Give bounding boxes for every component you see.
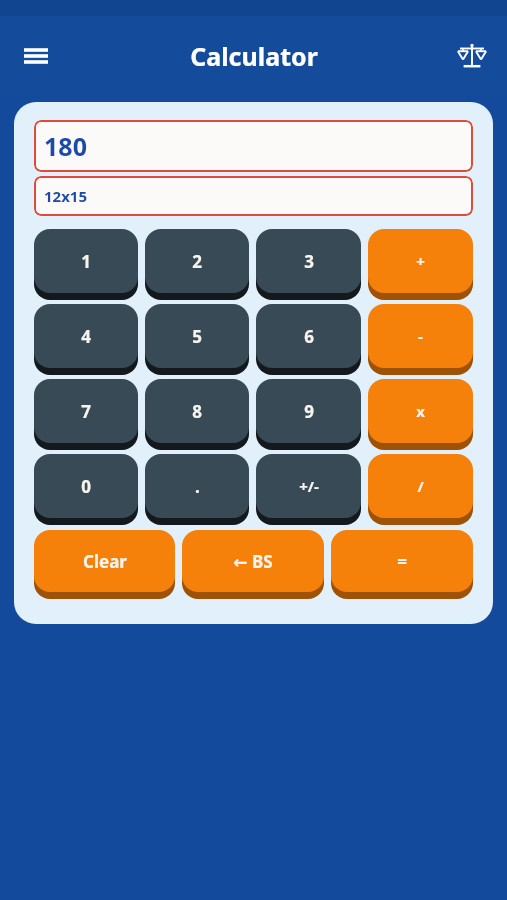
staticText: 180 — [44, 129, 87, 163]
staticText: 4 — [81, 325, 91, 348]
staticText: x — [416, 401, 425, 421]
button[interactable]: +/- — [256, 457, 361, 521]
staticText: . — [195, 475, 200, 498]
staticText: 5 — [192, 325, 202, 348]
staticText: Clear — [83, 550, 127, 573]
button[interactable]: . — [145, 457, 249, 521]
staticText: 12x15 — [44, 186, 87, 206]
button[interactable]: 1 — [34, 232, 138, 296]
button[interactable]: 5 — [145, 307, 249, 371]
staticText: ← BS — [233, 550, 273, 573]
staticText: 8 — [192, 400, 202, 423]
button[interactable]: 8 — [145, 382, 249, 446]
staticText: - — [418, 326, 423, 346]
staticText: 2 — [192, 250, 202, 273]
button[interactable]: 12x15 — [34, 176, 473, 216]
button[interactable]: + — [368, 232, 473, 296]
staticText: 9 — [304, 400, 314, 423]
button[interactable]: Clear — [34, 533, 175, 595]
button[interactable]: 9 — [256, 382, 361, 446]
button[interactable]: 2 — [145, 232, 249, 296]
staticText: / — [417, 476, 424, 496]
button[interactable]: 0 — [34, 457, 138, 521]
staticText: = — [397, 550, 407, 573]
button[interactable]: x — [368, 382, 473, 446]
button[interactable]: 6 — [256, 307, 361, 371]
button[interactable]: 180 — [34, 120, 473, 172]
staticText: 7 — [81, 400, 91, 423]
staticText: 1 — [81, 250, 91, 273]
button[interactable]: 3 — [256, 232, 361, 296]
button[interactable]: Unit converter — [449, 33, 495, 79]
staticText: Calculator — [190, 39, 318, 73]
button[interactable]: / — [368, 457, 473, 521]
button[interactable]: Menu — [12, 32, 60, 80]
staticText: +/- — [299, 476, 319, 496]
button[interactable]: 4 — [34, 307, 138, 371]
button[interactable]: = — [331, 533, 473, 595]
button[interactable]: - — [368, 307, 473, 371]
staticText: 0 — [81, 475, 91, 498]
button[interactable]: 7 — [34, 382, 138, 446]
staticText: + — [416, 251, 425, 271]
button[interactable]: ← BS — [182, 533, 324, 595]
staticText: 6 — [304, 325, 314, 348]
staticText: 3 — [304, 250, 314, 273]
